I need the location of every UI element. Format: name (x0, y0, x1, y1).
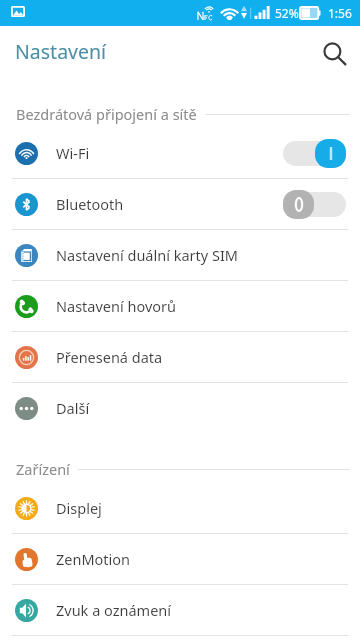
staticText: Nastavení duální karty SIM (56, 245, 239, 265)
staticText: Zvuk a oznámení (56, 600, 172, 620)
staticText: 52% (275, 5, 299, 21)
button[interactable]: Zvuk a oznámení (0, 585, 360, 636)
button[interactable]: Nastavení hovorů (0, 281, 360, 332)
button[interactable]: Bluetooth (0, 179, 360, 230)
button[interactable]: Přenesená data (0, 332, 360, 383)
staticText: Displej (56, 498, 102, 518)
staticText: Bluetooth (56, 194, 124, 214)
button[interactable]: Displej (0, 483, 360, 534)
button[interactable]: Nastavení duální karty SIM (0, 230, 360, 281)
button[interactable]: Wi-Fi (0, 128, 360, 179)
staticText: Zařízení (16, 459, 70, 479)
staticText: ZenMotion (56, 549, 131, 569)
button[interactable]: Search (312, 31, 358, 77)
staticText: Nastavení hovorů (56, 296, 177, 316)
button[interactable]: ZenMotion (0, 534, 360, 585)
staticText: Další (56, 398, 90, 418)
button[interactable]: Další (0, 383, 360, 434)
staticText: 1:56 (328, 5, 352, 21)
staticText: Bezdrátová připojení a sítě (16, 104, 197, 124)
staticText: Wi-Fi (56, 143, 90, 163)
staticText: Nastavení (15, 38, 107, 65)
staticText: Přenesená data (56, 347, 163, 367)
